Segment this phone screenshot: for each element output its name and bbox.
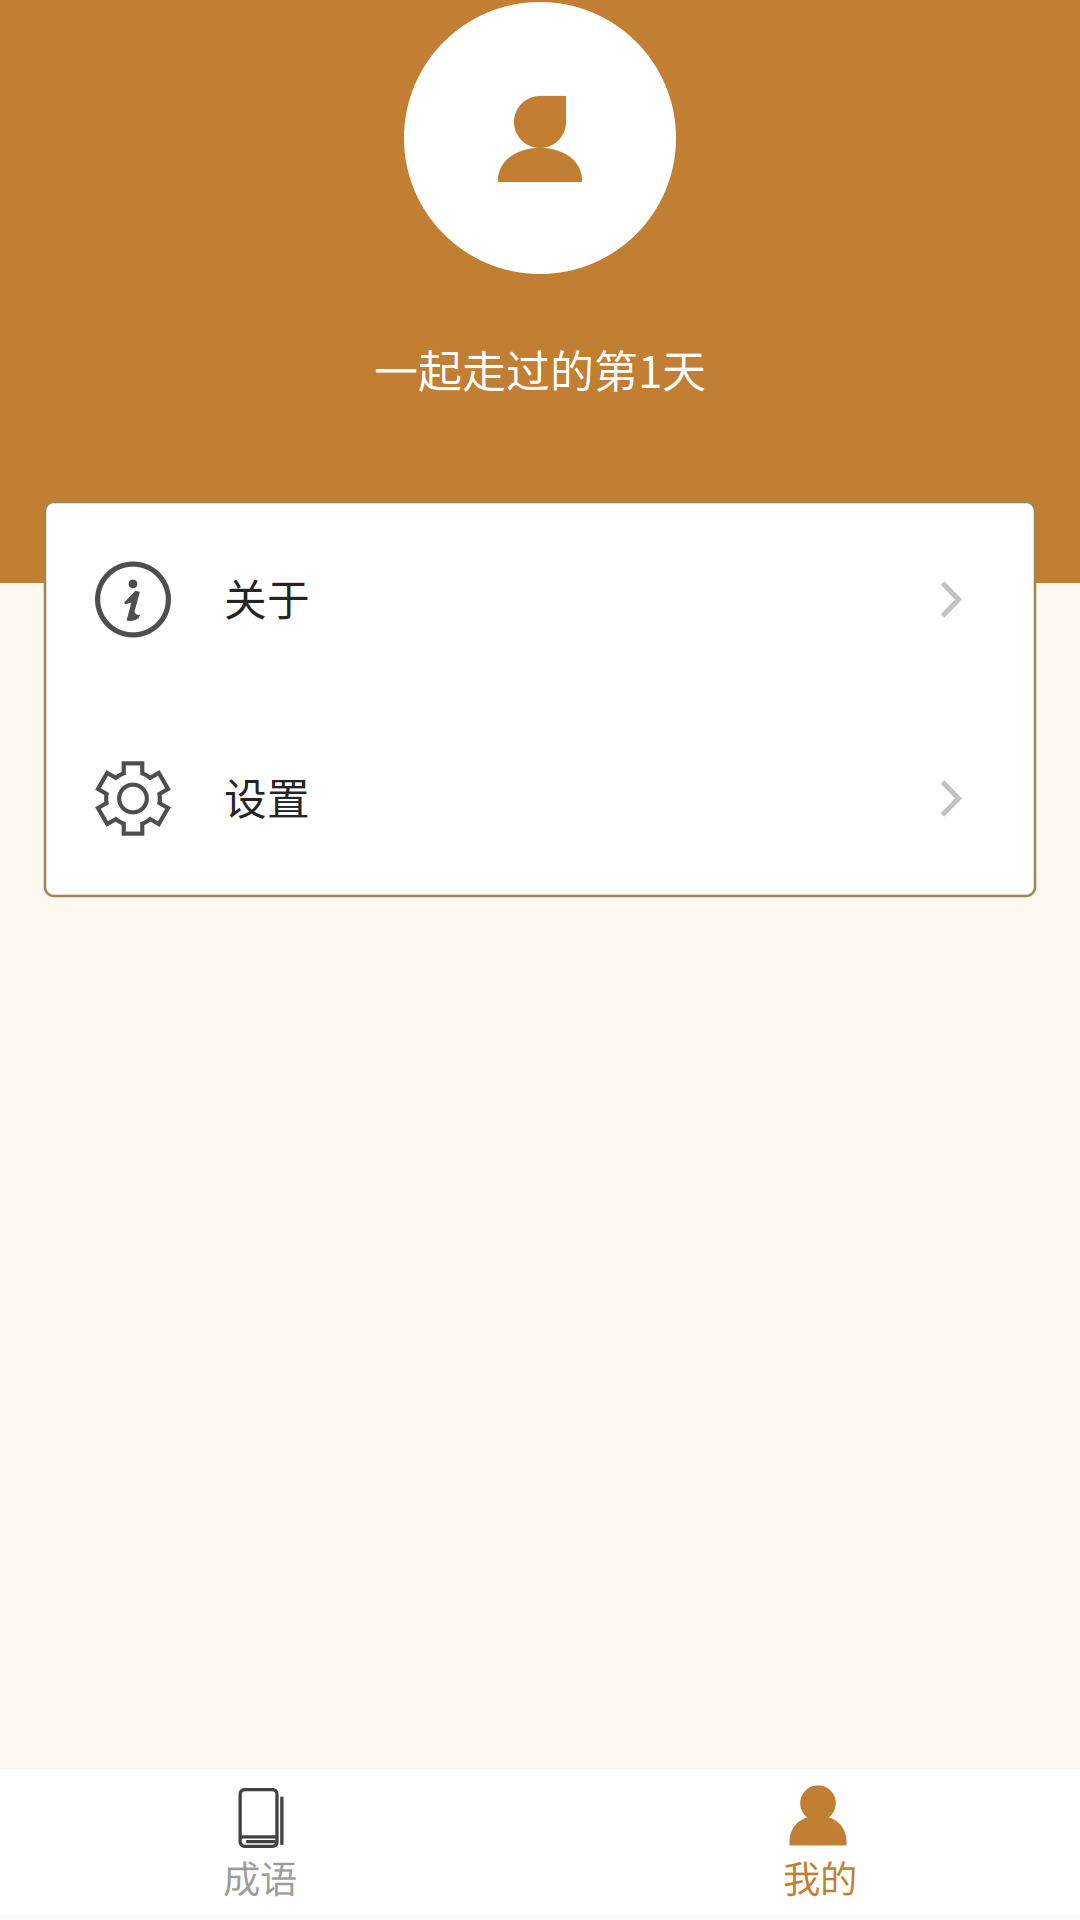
button[interactable]: 成语: [0, 1769, 520, 1920]
button[interactable]: 关于: [45, 502, 1035, 699]
staticText: 我的: [783, 1850, 857, 1904]
button[interactable]: 设置: [45, 699, 1035, 896]
staticText: 成语: [223, 1850, 297, 1904]
staticText: 一起走过的第1天: [374, 337, 706, 401]
staticText: 设置: [224, 766, 310, 827]
button[interactable]: 我的: [560, 1769, 1080, 1920]
staticText: 关于: [224, 567, 310, 628]
